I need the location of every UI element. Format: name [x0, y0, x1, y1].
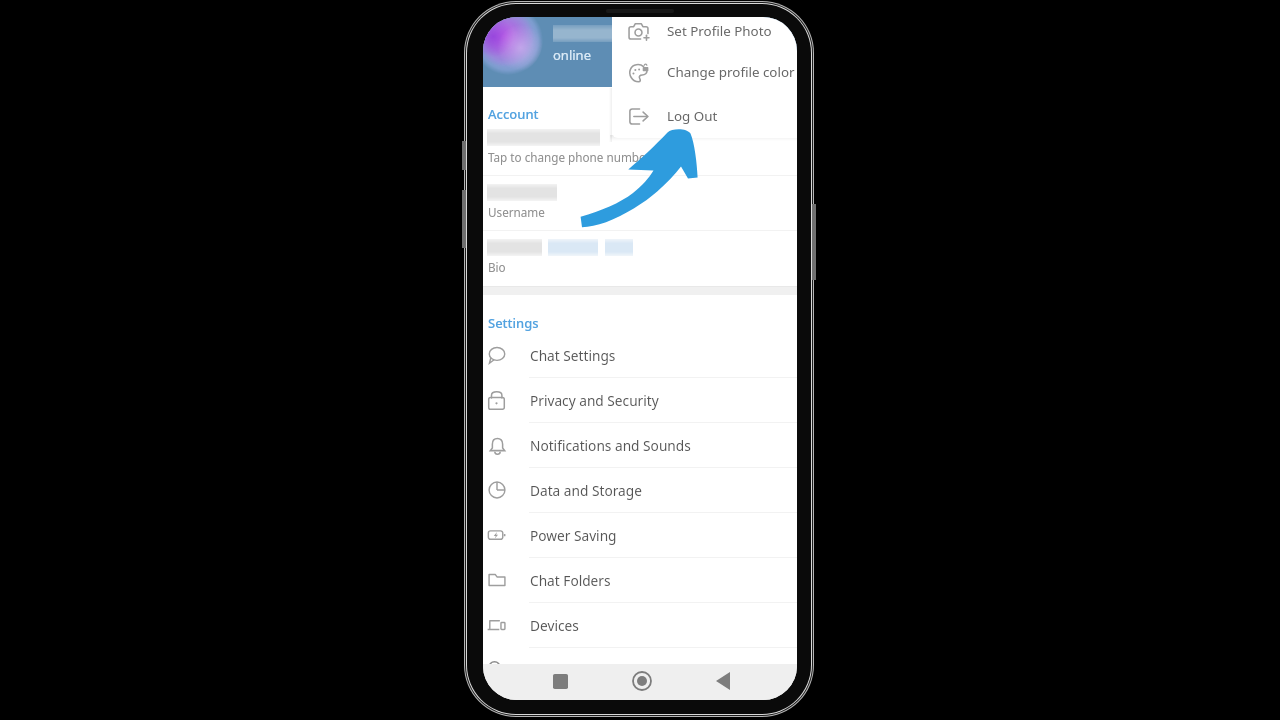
- button[interactable]: Username: [483, 175, 797, 230]
- button[interactable]: Data and Storage: [483, 468, 797, 513]
- staticText: Account: [488, 105, 539, 123]
- button[interactable]: Home: [612, 664, 672, 700]
- button[interactable]: Profile, online: [483, 17, 797, 87]
- staticText: Devices: [530, 616, 579, 635]
- staticText: online: [553, 46, 591, 64]
- staticText: Username: [488, 204, 545, 220]
- staticText: Change profile color: [667, 63, 795, 81]
- button[interactable]: Chat Settings: [483, 333, 797, 378]
- staticText: Tap to change phone number: [488, 149, 651, 165]
- button[interactable]: Notifications and Sounds: [483, 423, 797, 468]
- staticText: Power Saving: [530, 526, 617, 545]
- button[interactable]: Chat Folders: [483, 558, 797, 603]
- staticText: Data and Storage: [530, 481, 642, 500]
- staticText: Log Out: [667, 107, 718, 125]
- staticText: Bio: [488, 259, 506, 275]
- button[interactable]: Recent apps: [530, 664, 590, 700]
- staticText: Chat Folders: [530, 571, 611, 590]
- staticText: Set Profile Photo: [667, 22, 772, 40]
- staticText: Privacy and Security: [530, 391, 659, 410]
- button[interactable]: Devices: [483, 603, 797, 648]
- button[interactable]: Power Saving: [483, 513, 797, 558]
- button[interactable]: Bio: [483, 230, 797, 285]
- staticText: Notifications and Sounds: [530, 436, 691, 455]
- staticText: Chat Settings: [530, 346, 616, 365]
- button[interactable]: Privacy and Security: [483, 378, 797, 423]
- staticText: Settings: [488, 314, 539, 332]
- button[interactable]: Change profile color: [612, 51, 797, 93]
- button[interactable]: Back: [693, 664, 753, 700]
- button[interactable]: Log Out: [612, 95, 797, 137]
- button[interactable]: Set Profile Photo: [612, 17, 797, 52]
- button[interactable]: Tap to change phone number: [483, 120, 797, 175]
